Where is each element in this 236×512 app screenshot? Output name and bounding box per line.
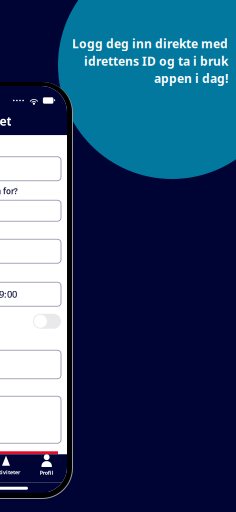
- staticText: Profil: [40, 469, 54, 476]
- staticText: Aktiviteter: [0, 469, 20, 476]
- staticText: Ny aktivitet: [0, 113, 11, 129]
- button[interactable]: Toggle: [33, 314, 61, 329]
- button[interactable]: Profil: [26, 454, 67, 482]
- button[interactable]: Aktiviteter: [0, 454, 26, 482]
- staticText: appen i dag!: [154, 70, 228, 86]
- staticText: idrettens ID og ta i bruk: [84, 53, 228, 69]
- staticText: Logg deg inn direkte med: [72, 36, 228, 51]
- staticText: 09:00: [0, 288, 17, 300]
- staticText: Hvem er den for?: [0, 186, 18, 196]
- button[interactable]: 09:00: [0, 282, 61, 306]
